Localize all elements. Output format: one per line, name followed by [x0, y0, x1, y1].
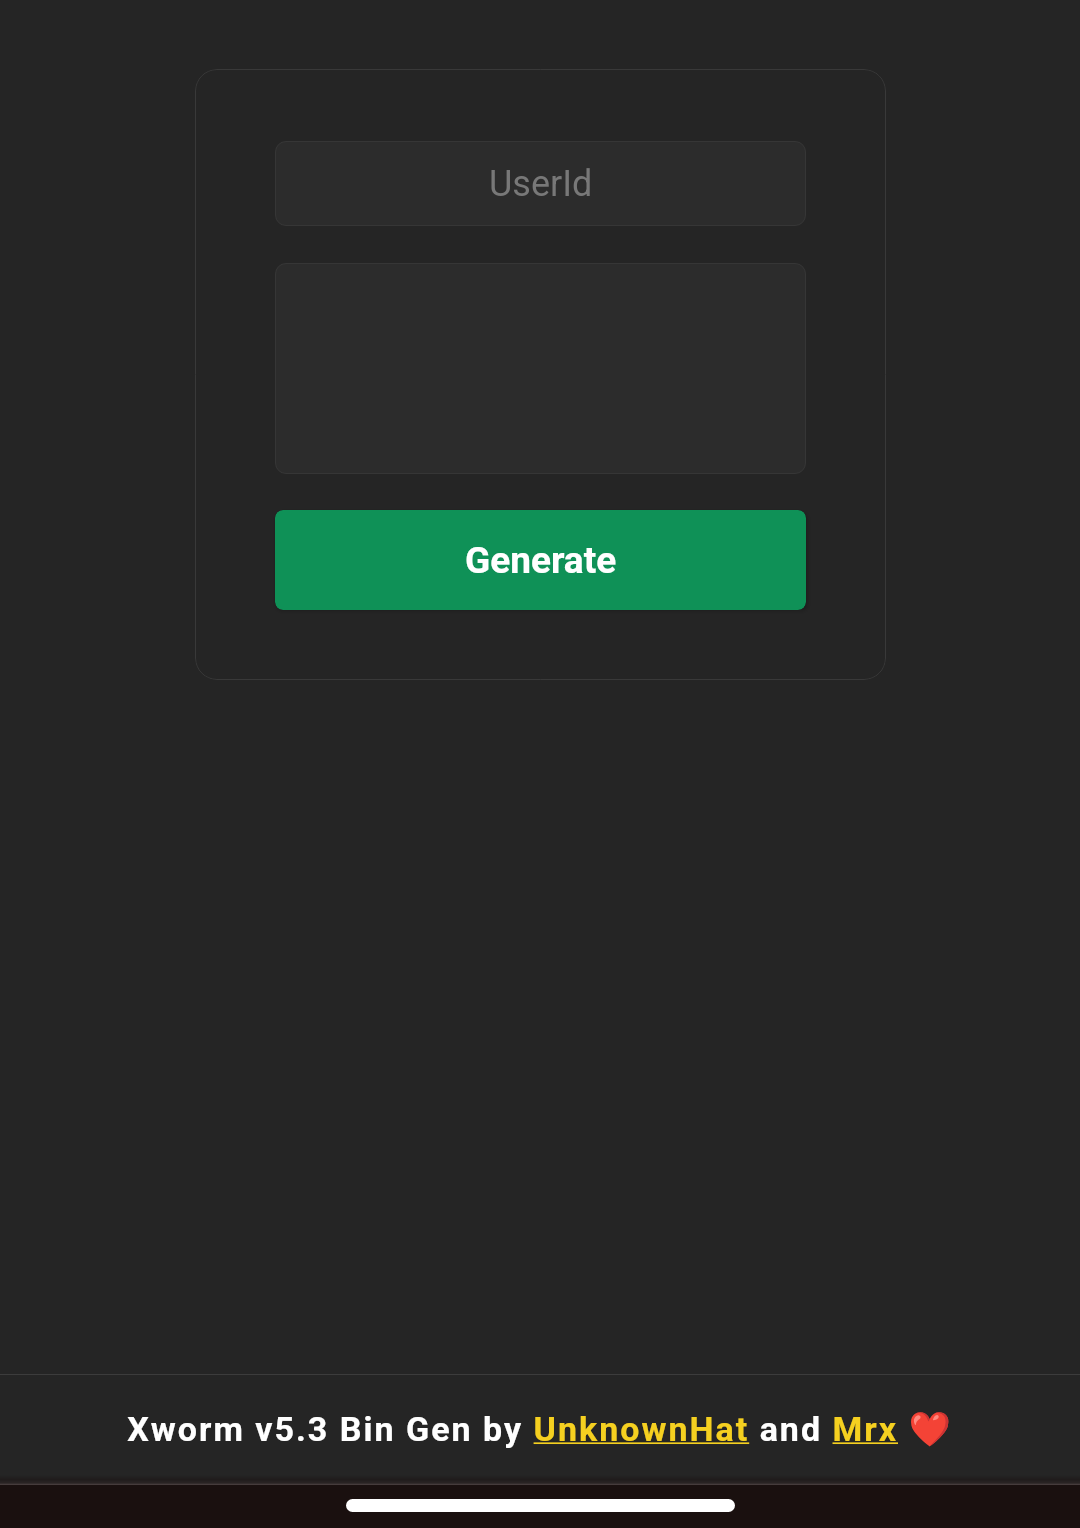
button[interactable]: Generate — [275, 510, 806, 610]
other: Home — [0, 1485, 1080, 1528]
staticText: Xworm v5.3 Bin Gen by UnknownHat and Mrx… — [127, 1409, 953, 1449]
staticText: UserId — [489, 163, 593, 205]
button[interactable]: UserId — [275, 141, 806, 226]
staticText: Generate — [465, 539, 617, 582]
